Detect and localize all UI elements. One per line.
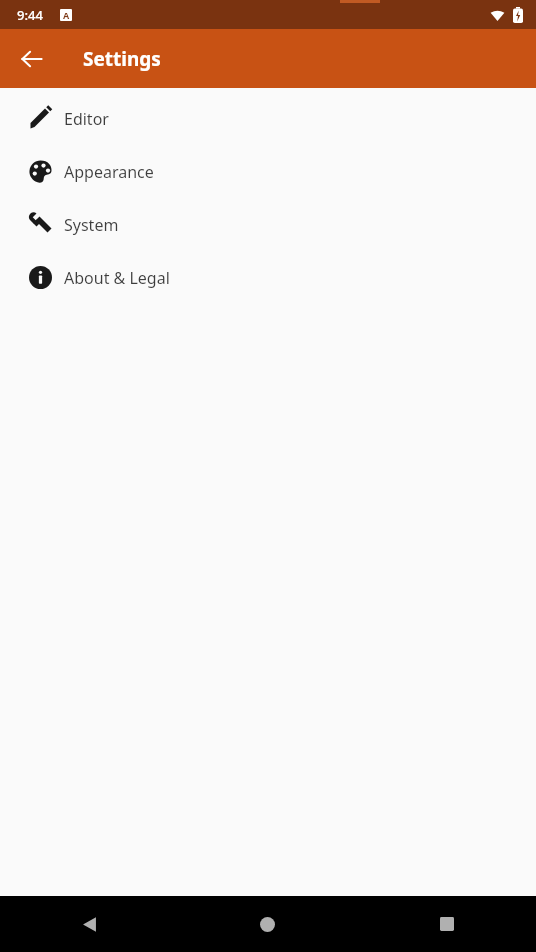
staticText: About & Legal: [64, 267, 170, 289]
staticText: System: [64, 214, 119, 236]
button[interactable]: Back: [8, 35, 56, 83]
staticText: 9:44: [17, 6, 43, 24]
staticText: A: [63, 9, 70, 21]
staticText: Editor: [64, 108, 109, 130]
button[interactable]: Home: [178, 896, 357, 952]
button[interactable]: About & Legal: [0, 251, 536, 304]
button[interactable]: Editor: [0, 92, 536, 145]
button[interactable]: Appearance: [0, 145, 536, 198]
button[interactable]: System: [0, 198, 536, 251]
staticText: Appearance: [64, 161, 154, 183]
staticText: Settings: [83, 46, 161, 72]
button[interactable]: Recents: [357, 896, 536, 952]
button[interactable]: Back: [0, 896, 178, 952]
